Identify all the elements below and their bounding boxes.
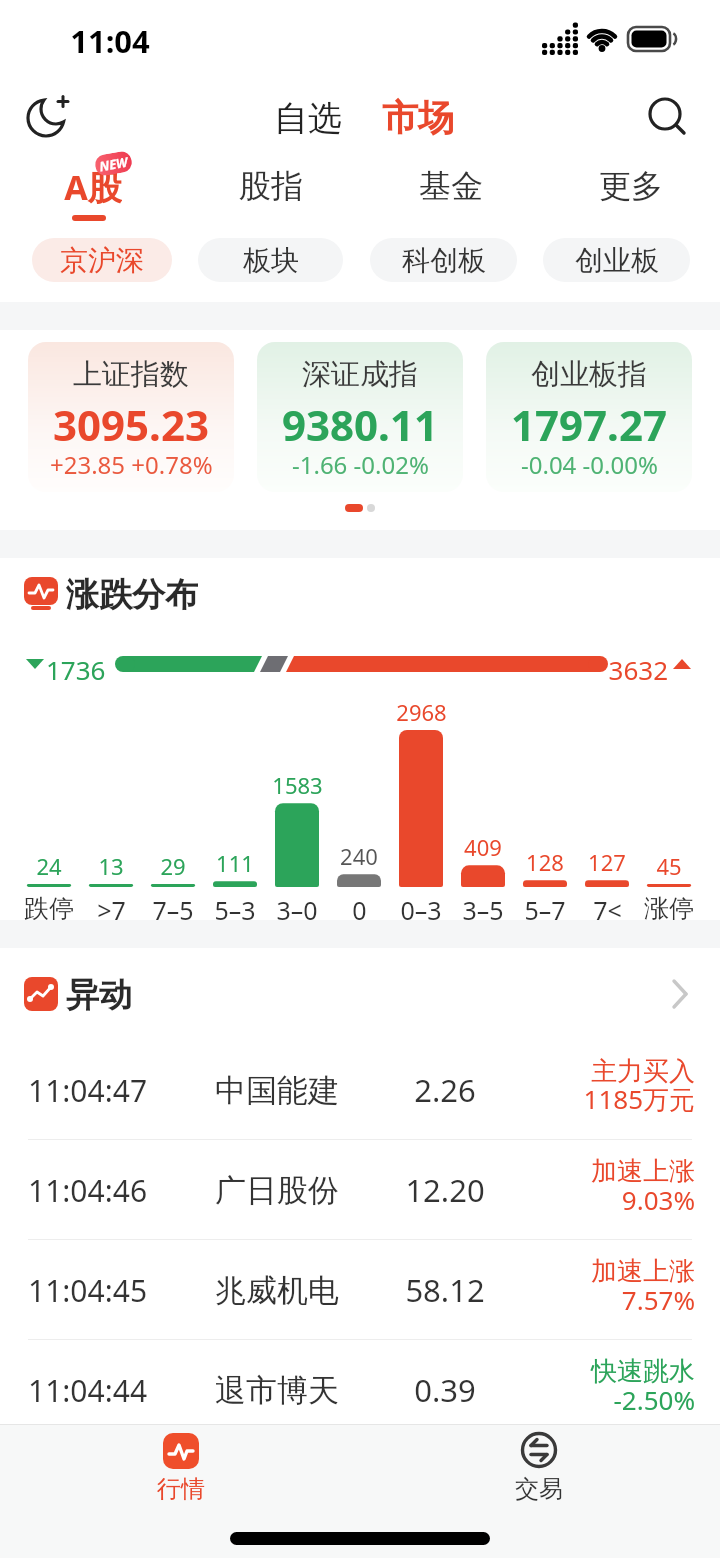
button[interactable]: 股指 xyxy=(218,166,323,206)
staticText: 股指 xyxy=(239,166,303,206)
staticText: 11:04:45 xyxy=(28,1270,148,1311)
staticText: 上证指数 xyxy=(73,356,189,393)
staticText: 京沪深 xyxy=(60,243,144,278)
button[interactable]: 交易 xyxy=(469,1426,609,1510)
staticText: -2.50% xyxy=(613,1382,695,1417)
staticText: 快速跳水 xyxy=(591,1355,695,1388)
staticText: 45 xyxy=(656,851,682,879)
staticText: -0.04 -0.00% xyxy=(521,448,658,480)
button[interactable] xyxy=(26,96,70,140)
staticText: 1185万元 xyxy=(583,1081,695,1117)
staticText: 兆威机电 xyxy=(215,1271,339,1310)
staticText: 交易 xyxy=(515,1474,563,1504)
staticText: 12.20 xyxy=(405,1169,485,1211)
button[interactable]: 创业板 xyxy=(543,238,690,282)
staticText: 3095.23 xyxy=(53,396,209,452)
staticText: A股 xyxy=(64,164,122,206)
staticText: 5–3 xyxy=(214,893,256,923)
staticText: 中国能建 xyxy=(215,1071,339,1110)
staticText: 11:04:47 xyxy=(28,1070,148,1111)
staticText: 58.12 xyxy=(405,1269,485,1311)
staticText: 涨跌分布 xyxy=(66,574,198,614)
button[interactable]: 科创板 xyxy=(370,238,517,282)
button[interactable]: 11:04:44 xyxy=(0,1340,720,1440)
staticText: +23.85 +0.78% xyxy=(50,448,213,480)
staticText: 13 xyxy=(98,851,124,879)
staticText: 2968 xyxy=(396,697,447,725)
staticText: NEW xyxy=(98,153,129,175)
staticText: 创业板指 xyxy=(531,356,647,393)
staticText: 0–3 xyxy=(400,893,442,923)
staticText: 异动 xyxy=(66,974,132,1014)
button[interactable]: 11:04:47 xyxy=(0,1040,720,1140)
staticText: 3632 xyxy=(608,652,668,682)
button[interactable]: 更多 xyxy=(578,166,683,206)
staticText: 29 xyxy=(160,851,186,879)
staticText: 基金 xyxy=(419,166,483,206)
button[interactable]: 行情 xyxy=(111,1426,251,1510)
button[interactable] xyxy=(644,94,692,142)
staticText: 自选 xyxy=(274,97,342,140)
button[interactable]: 11:04:45 xyxy=(0,1240,720,1340)
staticText: 9380.11 xyxy=(282,396,438,452)
button[interactable] xyxy=(660,974,700,1014)
staticText: -1.66 -0.02% xyxy=(292,448,429,480)
staticText: 涨停 xyxy=(644,893,694,923)
staticText: 科创板 xyxy=(402,243,486,278)
staticText: 0.39 xyxy=(414,1369,476,1411)
staticText: 广日股份 xyxy=(215,1171,339,1210)
button[interactable]: 基金 xyxy=(398,166,503,206)
button[interactable]: 板块 xyxy=(198,238,343,282)
staticText: 更多 xyxy=(599,166,663,206)
staticText: 7< xyxy=(593,893,622,923)
staticText: 240 xyxy=(340,841,378,869)
button[interactable]: 11:04:46 xyxy=(0,1140,720,1240)
button[interactable]: A股 xyxy=(40,164,145,206)
staticText: 1583 xyxy=(272,770,323,798)
staticText: 7–5 xyxy=(152,893,194,923)
staticText: 退市博天 xyxy=(215,1371,339,1410)
staticText: 128 xyxy=(526,847,564,875)
button[interactable]: 创业板指 xyxy=(486,342,692,492)
staticText: 深证成指 xyxy=(302,356,418,393)
staticText: 0 xyxy=(352,893,367,923)
staticText: >7 xyxy=(97,893,126,923)
button[interactable]: 市场 xyxy=(363,94,473,140)
staticText: 3–5 xyxy=(462,893,504,923)
staticText: 市场 xyxy=(382,95,454,140)
staticText: 主力买入 xyxy=(591,1055,695,1088)
staticText: 2.26 xyxy=(414,1069,476,1111)
staticText: 1736 xyxy=(46,652,106,682)
button[interactable]: 自选 xyxy=(253,96,363,140)
staticText: 7.57% xyxy=(621,1282,695,1317)
staticText: 1797.27 xyxy=(511,396,667,452)
staticText: 9.03% xyxy=(621,1182,695,1217)
staticText: 行情 xyxy=(157,1474,205,1504)
button[interactable]: 京沪深 xyxy=(32,238,172,282)
staticText: 3–0 xyxy=(276,893,318,923)
button[interactable]: 上证指数 xyxy=(28,342,234,492)
staticText: 24 xyxy=(36,851,62,879)
staticText: 5–7 xyxy=(524,893,566,923)
staticText: 加速上涨 xyxy=(591,1155,695,1188)
button[interactable]: 深证成指 xyxy=(257,342,463,492)
staticText: 跌停 xyxy=(24,893,74,923)
staticText: 11:04 xyxy=(70,20,150,58)
staticText: 11:04:46 xyxy=(28,1170,148,1211)
staticText: 板块 xyxy=(243,243,299,278)
staticText: 111 xyxy=(216,848,254,876)
staticText: 127 xyxy=(588,847,626,875)
staticText: 409 xyxy=(464,832,502,860)
staticText: 11:04:44 xyxy=(28,1370,148,1411)
staticText: 创业板 xyxy=(575,243,659,278)
staticText: 加速上涨 xyxy=(591,1255,695,1288)
